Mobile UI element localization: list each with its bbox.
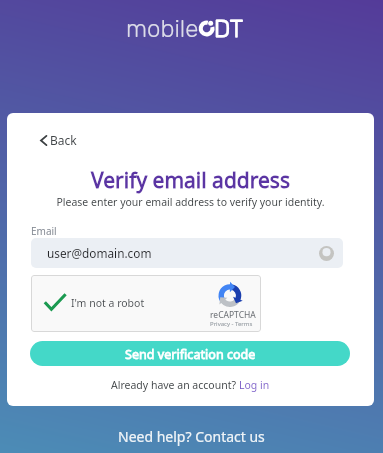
- button[interactable]: Log in: [239, 378, 270, 392]
- other: Saved passwords: [319, 246, 334, 261]
- staticText: mobile: [126, 15, 199, 43]
- staticText: I'm not a robot: [71, 296, 145, 310]
- button[interactable]: Back: [36, 128, 83, 152]
- staticText: Email: [31, 224, 57, 238]
- button[interactable]: user@domain.com: [31, 238, 343, 268]
- staticText: Already have an account?: [111, 378, 239, 392]
- staticText: Please enter your email address to verif…: [7, 195, 374, 209]
- staticText: Back: [50, 132, 77, 148]
- staticText: Send verification code: [125, 346, 256, 363]
- staticText: user@domain.com: [47, 245, 152, 261]
- staticText: Verify email address: [7, 166, 374, 195]
- button[interactable]: Send verification code: [30, 341, 350, 366]
- staticText: DT: [214, 15, 244, 43]
- button[interactable]: I'm not a robot: [31, 275, 261, 332]
- staticText: Privacy - Terms: [210, 320, 253, 328]
- button[interactable]: Need help? Contact us: [118, 427, 265, 446]
- other: mobileODT: [0, 0, 383, 453]
- staticText: reCAPTCHA: [210, 309, 256, 321]
